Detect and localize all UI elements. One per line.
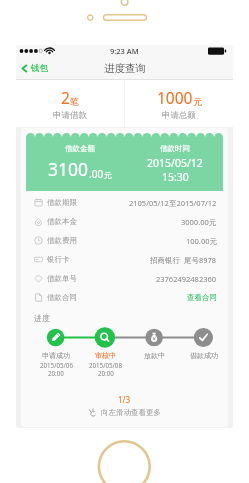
staticText: 2 xyxy=(61,87,70,108)
button[interactable]: Back to 钱包 xyxy=(19,57,48,80)
staticText: 20:00 xyxy=(98,369,114,377)
staticText: 进度查询 xyxy=(104,62,146,75)
staticText: 查看合同 xyxy=(187,293,217,302)
staticText: 1/3 xyxy=(118,394,131,405)
button[interactable]: 银行卡 xyxy=(34,250,217,269)
staticText: 2015/05/06 xyxy=(40,361,73,369)
button[interactable]: 2 xyxy=(16,80,124,127)
staticText: 3000.00元 xyxy=(181,217,217,227)
staticText: 借款成功 xyxy=(190,351,218,360)
staticText: .00 xyxy=(89,167,104,181)
staticText: 元 xyxy=(193,96,202,107)
button[interactable]: 借款合同 xyxy=(34,288,217,307)
button[interactable]: 借款单号 xyxy=(34,269,217,288)
staticText: 借款费用 xyxy=(47,236,77,245)
staticText: 借款金额 xyxy=(65,144,95,153)
staticText: 申请总额 xyxy=(162,110,196,121)
staticText: 3100 xyxy=(48,157,89,181)
staticText: 2015/05/08 xyxy=(89,361,122,369)
button[interactable]: 1000 xyxy=(125,80,233,127)
button[interactable]: 审核中 xyxy=(81,351,130,377)
staticText: 招商银行 尾号8978 xyxy=(150,255,217,265)
staticText: 放款中 xyxy=(144,351,165,360)
staticText: 银行卡 xyxy=(47,255,70,264)
staticText: 20:00 xyxy=(48,369,64,377)
staticText: 笔 xyxy=(70,96,79,107)
staticText: 15:30 xyxy=(162,170,189,184)
staticText: 100.00元 xyxy=(186,236,217,246)
staticText: 23762492482360 xyxy=(156,274,217,284)
staticText: 元 xyxy=(104,170,112,180)
staticText: 9:23 AM xyxy=(110,46,139,56)
button[interactable]: 借款本金 xyxy=(34,212,217,231)
staticText: 向左滑动查看更多 xyxy=(101,408,161,417)
staticText: 借款单号 xyxy=(47,274,77,283)
button[interactable]: 借款成功 xyxy=(179,351,228,360)
button[interactable]: 放款中 xyxy=(130,351,179,360)
button[interactable]: 申请成功 xyxy=(31,351,81,377)
button[interactable]: Swipe left for more xyxy=(89,408,161,417)
button[interactable]: 借款期限 xyxy=(34,193,217,212)
staticText: 审核中 xyxy=(95,351,116,360)
button[interactable]: 借款费用 xyxy=(34,231,217,250)
staticText: 申请借款 xyxy=(53,110,87,121)
staticText: 申请成功 xyxy=(42,351,70,360)
staticText: 借款期限 xyxy=(47,198,77,207)
staticText: 2105/05/12至2015/07/12 xyxy=(129,198,217,208)
staticText: 2015/05/12 xyxy=(147,156,203,170)
staticText: 钱包 xyxy=(31,63,48,74)
staticText: 借款时间 xyxy=(160,144,190,153)
staticText: 借款本金 xyxy=(47,217,77,226)
staticText: 进度 xyxy=(34,313,50,323)
staticText: 1000 xyxy=(157,87,193,108)
staticText: 借款合同 xyxy=(47,293,77,302)
